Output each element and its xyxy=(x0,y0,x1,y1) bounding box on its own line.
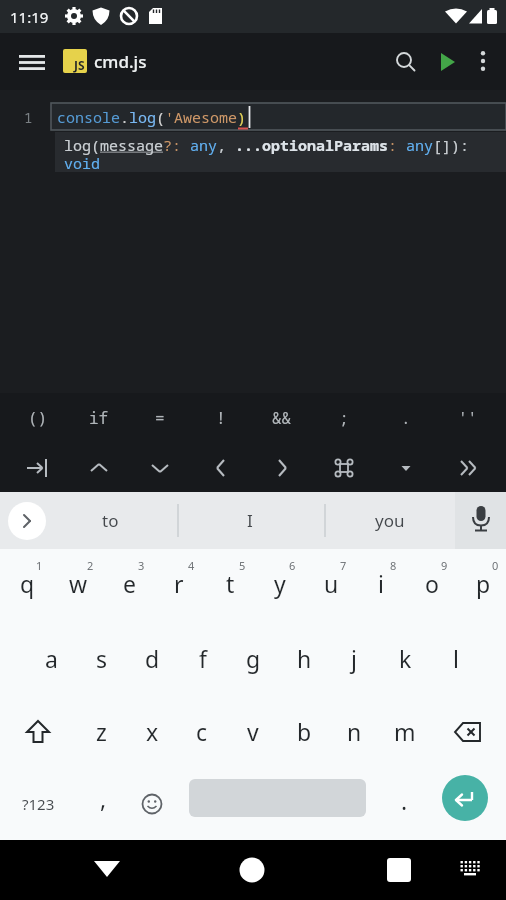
staticText: m xyxy=(394,716,416,747)
button[interactable] xyxy=(455,492,506,549)
button[interactable]: u xyxy=(304,549,354,622)
button[interactable]: z xyxy=(76,695,126,768)
staticText: z xyxy=(96,716,107,747)
button[interactable] xyxy=(442,775,488,821)
staticText: 3 xyxy=(138,558,145,573)
staticText: q xyxy=(20,568,35,599)
button[interactable] xyxy=(190,443,251,492)
staticText: 8 xyxy=(390,558,397,573)
staticText: log(message?: any, ...optionalParams: an… xyxy=(64,135,470,155)
staticText: g xyxy=(246,643,261,674)
button[interactable] xyxy=(251,443,313,492)
button[interactable]: n xyxy=(329,695,379,768)
button[interactable] xyxy=(313,443,375,492)
button[interactable]: h xyxy=(279,622,329,695)
staticText: t xyxy=(226,568,235,599)
button[interactable] xyxy=(10,47,54,77)
button[interactable] xyxy=(465,43,501,79)
button[interactable]: ?123 xyxy=(0,768,76,840)
button[interactable]: b xyxy=(279,695,329,768)
button[interactable] xyxy=(129,443,190,492)
staticText: 7 xyxy=(340,558,347,573)
staticText: w xyxy=(69,568,88,599)
button[interactable]: I xyxy=(200,492,300,549)
button[interactable]: JS xyxy=(63,49,147,73)
button[interactable]: you xyxy=(340,492,440,549)
button[interactable]: if xyxy=(68,393,129,443)
button[interactable]: ! xyxy=(190,393,251,443)
button[interactable]: i xyxy=(354,549,404,622)
button[interactable]: e xyxy=(102,549,152,622)
staticText: . xyxy=(401,407,411,429)
button[interactable]: l xyxy=(431,622,481,695)
button[interactable] xyxy=(387,43,425,81)
button[interactable]: y xyxy=(253,549,303,622)
button[interactable] xyxy=(8,502,46,540)
staticText: '' xyxy=(458,407,478,429)
button[interactable]: a xyxy=(26,622,76,695)
button[interactable] xyxy=(127,768,177,840)
staticText: if xyxy=(89,407,109,429)
button[interactable]: d xyxy=(127,622,177,695)
button[interactable]: '' xyxy=(437,393,499,443)
button[interactable]: o xyxy=(405,549,455,622)
button[interactable]: ; xyxy=(313,393,375,443)
button[interactable]: , xyxy=(78,768,128,840)
staticText: JS xyxy=(74,57,85,73)
staticText: e xyxy=(123,568,136,599)
staticText: o xyxy=(425,568,439,599)
button[interactable]: () xyxy=(7,393,68,443)
staticText: n xyxy=(347,716,362,747)
staticText: && xyxy=(272,407,292,429)
staticText: y xyxy=(274,568,286,599)
button[interactable] xyxy=(452,850,488,886)
button[interactable]: q xyxy=(0,549,50,622)
button[interactable]: = xyxy=(129,393,190,443)
button[interactable]: s xyxy=(77,622,127,695)
staticText: v xyxy=(247,716,259,747)
staticText: b xyxy=(297,716,312,747)
button[interactable]: r xyxy=(152,549,202,622)
staticText: a xyxy=(45,643,58,674)
staticText: = xyxy=(155,407,165,429)
button[interactable] xyxy=(230,848,274,892)
button[interactable]: f xyxy=(178,622,228,695)
button[interactable]: && xyxy=(251,393,313,443)
button[interactable]: c xyxy=(177,695,227,768)
staticText: 11:19 xyxy=(10,7,49,27)
button[interactable]: to xyxy=(60,492,160,549)
button[interactable] xyxy=(429,43,467,81)
staticText: ! xyxy=(216,407,226,429)
button[interactable]: j xyxy=(329,622,379,695)
button[interactable] xyxy=(85,848,129,892)
button[interactable] xyxy=(430,695,506,768)
staticText: l xyxy=(453,643,459,674)
button[interactable]: v xyxy=(228,695,278,768)
button[interactable] xyxy=(0,695,76,768)
staticText: c xyxy=(196,716,208,747)
staticText: ; xyxy=(339,407,349,429)
button[interactable]: x xyxy=(127,695,177,768)
button[interactable] xyxy=(377,848,421,892)
button[interactable] xyxy=(68,443,129,492)
button[interactable]: m xyxy=(380,695,430,768)
staticText: f xyxy=(199,643,207,674)
staticText: j xyxy=(351,643,357,674)
button[interactable]: . xyxy=(375,393,437,443)
staticText: 5 xyxy=(239,558,246,573)
button[interactable] xyxy=(437,443,499,492)
button[interactable]: k xyxy=(380,622,430,695)
button[interactable]: . xyxy=(379,768,429,840)
button[interactable]: p xyxy=(456,549,506,622)
button[interactable]: t xyxy=(203,549,253,622)
button[interactable]: g xyxy=(228,622,278,695)
button[interactable] xyxy=(7,443,68,492)
staticText: 1 xyxy=(36,558,43,573)
staticText: 4 xyxy=(188,558,195,573)
button[interactable] xyxy=(375,443,437,492)
button[interactable]: w xyxy=(51,549,101,622)
staticText: to xyxy=(102,509,119,532)
staticText: I xyxy=(247,509,253,532)
staticText: x xyxy=(146,716,159,747)
